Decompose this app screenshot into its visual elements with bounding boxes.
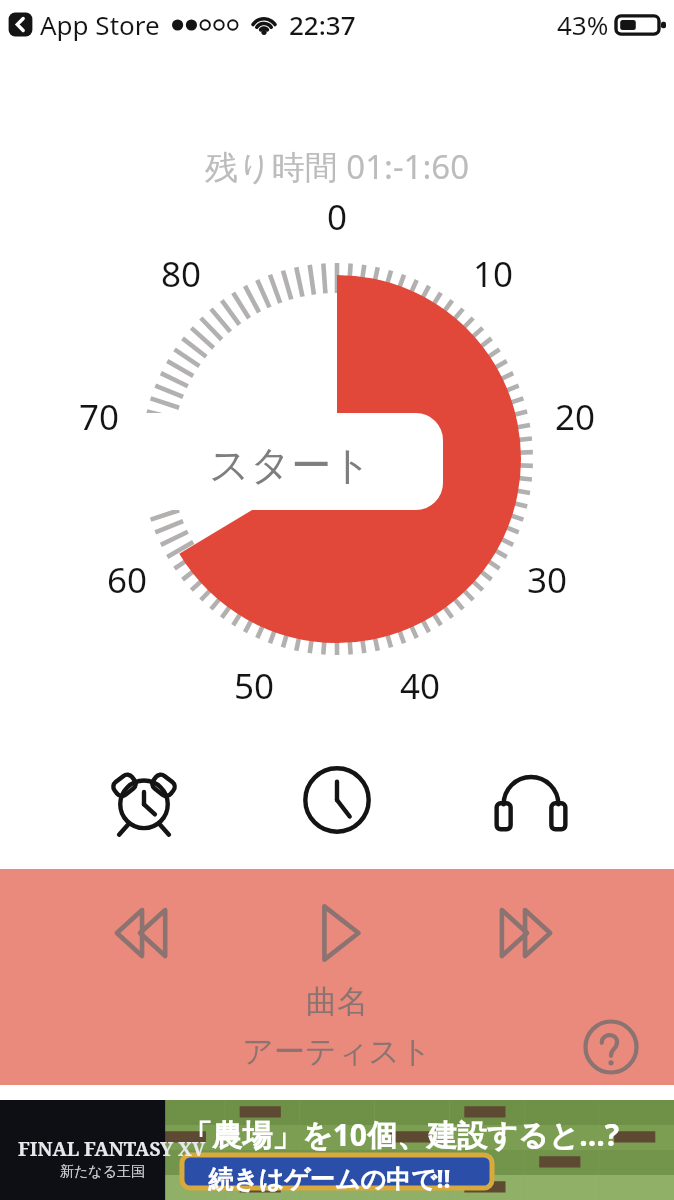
button[interactable]: Alarm (94, 750, 194, 850)
staticText: スタート (209, 440, 372, 486)
button[interactable]: Advertisement (0, 1100, 674, 1200)
staticText: 新たなる王国 (60, 1163, 145, 1181)
staticText: 70 (79, 393, 120, 441)
staticText: 60 (107, 556, 148, 604)
staticText: 残り時間 01:-1:60 (0, 144, 674, 189)
staticText: 0 (327, 193, 348, 241)
staticText: 22:37 (289, 7, 356, 42)
button[interactable]: Play (289, 893, 385, 973)
staticText: 「農場」を10個、建設すると…? (182, 1114, 620, 1155)
button[interactable]: Start timer (0, 0, 674, 1200)
staticText: 80 (161, 250, 202, 298)
staticText: FINAL FANTASY XV (18, 1136, 206, 1162)
button[interactable]: Clock (287, 750, 387, 850)
button[interactable]: Next (482, 893, 578, 973)
button[interactable]: Help (578, 1014, 644, 1080)
staticText: 30 (527, 556, 568, 604)
staticText: 43% (557, 7, 609, 42)
staticText: アーティスト (0, 1032, 674, 1071)
staticText: 50 (234, 662, 275, 710)
staticText: 20 (555, 393, 596, 441)
staticText: App Store (40, 7, 160, 42)
button[interactable]: Headphones (481, 750, 581, 850)
staticText: 40 (400, 662, 441, 710)
staticText: 曲名 (0, 982, 674, 1021)
staticText: 10 (473, 250, 514, 298)
button[interactable]: Previous (97, 893, 193, 973)
staticText: 続きはゲームの中で!! (208, 1161, 451, 1195)
